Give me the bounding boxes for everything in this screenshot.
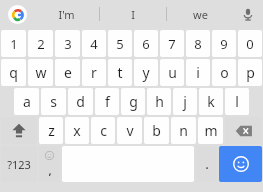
button[interactable]: 1 <box>1 30 26 57</box>
staticText: u <box>168 63 177 82</box>
staticText: I'm <box>58 7 75 22</box>
button[interactable]: q <box>1 59 26 86</box>
button[interactable]: we <box>167 0 233 28</box>
button[interactable]: w <box>28 59 53 86</box>
staticText: d <box>76 92 85 111</box>
staticText: c <box>100 121 107 140</box>
button[interactable]: Voice input <box>233 0 263 28</box>
staticText: , <box>48 163 52 178</box>
button[interactable]: ?123 <box>1 146 37 182</box>
button[interactable]: u <box>160 59 184 86</box>
button[interactable]: Shift <box>1 117 37 144</box>
button[interactable]: 2 <box>28 30 53 57</box>
staticText: z <box>48 121 55 140</box>
button[interactable]: c <box>91 117 115 144</box>
button[interactable]: j <box>173 88 197 115</box>
staticText: 9 <box>220 35 228 53</box>
staticText: y <box>142 63 150 82</box>
staticText: n <box>179 121 188 140</box>
button[interactable]: p <box>238 59 262 86</box>
staticText: t <box>117 63 123 82</box>
button[interactable]: v <box>117 117 142 144</box>
button[interactable]: a <box>14 88 39 115</box>
button[interactable]: g <box>121 88 145 115</box>
button[interactable]: r <box>82 59 106 86</box>
staticText: 7 <box>168 35 176 53</box>
staticText: 6 <box>142 35 150 53</box>
staticText: b <box>152 121 161 140</box>
button[interactable]: d <box>68 88 93 115</box>
staticText: 5 <box>116 35 124 53</box>
button[interactable]: 3 <box>55 30 80 57</box>
staticText: 0 <box>246 35 254 53</box>
staticText: r <box>91 63 97 82</box>
staticText: we <box>193 7 208 22</box>
button[interactable]: s <box>41 88 66 115</box>
staticText: o <box>220 63 229 82</box>
button[interactable]: k <box>199 88 223 115</box>
button[interactable]: y <box>134 59 158 86</box>
button[interactable]: h <box>147 88 171 115</box>
staticText: a <box>23 92 31 111</box>
staticText: q <box>9 63 18 82</box>
button[interactable]: e <box>55 59 80 86</box>
staticText: 1 <box>10 35 18 53</box>
button[interactable]: Backspace <box>225 117 262 144</box>
staticText: l <box>235 92 239 111</box>
button[interactable]: . <box>196 146 217 182</box>
staticText: w <box>35 63 47 82</box>
button[interactable]: n <box>171 117 196 144</box>
staticText: g <box>129 92 138 111</box>
button[interactable]: 9 <box>212 30 236 57</box>
button[interactable]: f <box>95 88 119 115</box>
button[interactable]: 8 <box>186 30 210 57</box>
staticText: i <box>196 63 200 82</box>
button[interactable]: 6 <box>134 30 158 57</box>
staticText: 4 <box>90 35 98 53</box>
button[interactable]: I <box>100 0 166 28</box>
staticText: k <box>207 92 215 111</box>
staticText: v <box>126 121 134 140</box>
button[interactable]: Emoji <box>219 146 262 182</box>
staticText: 8 <box>194 35 202 53</box>
button[interactable]: i <box>186 59 210 86</box>
button[interactable]: m <box>198 117 223 144</box>
staticText: 2 <box>37 35 45 53</box>
staticText: e <box>64 63 72 82</box>
button[interactable]: b <box>144 117 169 144</box>
button[interactable]: 7 <box>160 30 184 57</box>
button[interactable]: l <box>225 88 249 115</box>
staticText: m <box>204 121 218 140</box>
button[interactable]: 5 <box>108 30 132 57</box>
staticText: h <box>155 92 164 111</box>
button[interactable]: 0 <box>238 30 262 57</box>
staticText: p <box>246 63 255 82</box>
staticText: 3 <box>64 35 72 53</box>
staticText: s <box>50 92 57 111</box>
button[interactable]: 4 <box>82 30 106 57</box>
button[interactable]: Emoji and comma <box>39 146 60 182</box>
button[interactable]: z <box>39 117 63 144</box>
staticText: ?123 <box>7 157 31 172</box>
staticText: x <box>73 121 81 140</box>
button[interactable]: t <box>108 59 132 86</box>
staticText: I <box>131 7 135 22</box>
button[interactable]: I'm <box>34 0 99 28</box>
button[interactable]: Google <box>0 0 34 28</box>
button[interactable]: x <box>65 117 89 144</box>
staticText: . <box>205 157 209 172</box>
staticText: f <box>105 92 110 111</box>
staticText: j <box>183 92 187 111</box>
button[interactable]: o <box>212 59 236 86</box>
